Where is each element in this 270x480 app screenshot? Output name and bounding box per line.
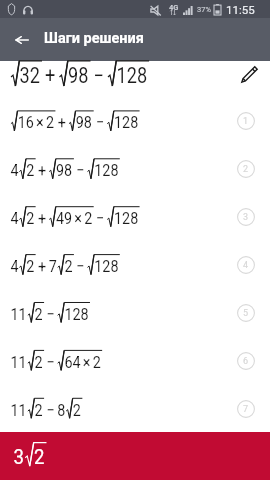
- button[interactable]: 4: [237, 256, 255, 274]
- button[interactable]: [0, 61, 270, 84]
- button[interactable]: 2: [0, 132, 270, 180]
- button[interactable]: 5: [237, 304, 255, 322]
- staticText: 7: [243, 404, 249, 415]
- staticText: 6: [243, 356, 249, 367]
- button[interactable]: 3: [0, 180, 270, 228]
- staticText: Шаги решения: [44, 30, 144, 47]
- button[interactable]: 1: [237, 112, 255, 130]
- staticText: 4: [243, 260, 249, 271]
- staticText: 2: [243, 164, 249, 175]
- button[interactable]: 2: [237, 160, 255, 178]
- button[interactable]: 7: [237, 400, 255, 418]
- staticText: 11:55: [226, 3, 255, 16]
- staticText: 4G: [169, 3, 179, 12]
- button[interactable]: Edit: [241, 66, 258, 83]
- button[interactable]: 6: [0, 324, 270, 372]
- staticText: 3: [243, 212, 249, 223]
- button[interactable]: 4: [0, 228, 270, 276]
- button[interactable]: 1: [0, 84, 270, 132]
- button[interactable]: 6: [237, 352, 255, 370]
- button[interactable]: 5: [0, 276, 270, 324]
- button[interactable]: 3: [237, 208, 255, 226]
- staticText: 37%: [197, 5, 211, 14]
- staticText: 1: [243, 116, 249, 127]
- button[interactable]: 7: [0, 372, 270, 420]
- staticText: 5: [243, 308, 249, 319]
- button[interactable]: Back: [9, 27, 34, 52]
